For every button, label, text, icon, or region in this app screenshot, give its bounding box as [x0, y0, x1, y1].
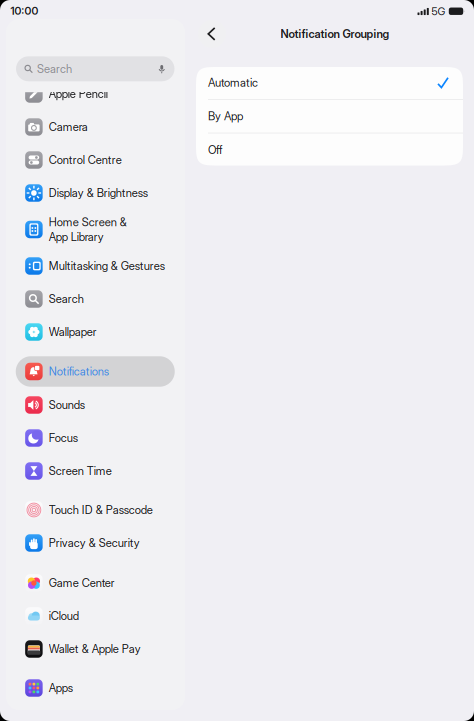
button[interactable]: Wallet & Apple Pay — [16, 632, 174, 665]
staticText: Control Centre — [49, 153, 122, 167]
staticText: Home Screen & — [49, 215, 127, 229]
staticText: Notifications — [49, 365, 109, 378]
staticText: Game Center — [49, 576, 115, 590]
staticText: 10:00 — [10, 4, 38, 17]
staticText: Screen Time — [49, 464, 112, 478]
button[interactable]: Apps — [16, 671, 174, 704]
staticText: Display & Brightness — [49, 186, 148, 200]
button[interactable]: Off — [196, 133, 463, 166]
button[interactable]: By App — [196, 100, 463, 133]
button[interactable]: Multitasking & Gestures — [16, 249, 174, 282]
staticText: Focus — [49, 431, 78, 445]
staticText: Off — [208, 143, 222, 157]
button[interactable]: Sounds — [16, 388, 174, 421]
button[interactable]: Display & Brightness — [16, 176, 174, 209]
button[interactable]: Home Screen & — [16, 209, 174, 249]
button[interactable]: Screen Time — [16, 454, 174, 487]
staticText: Apps — [49, 681, 73, 695]
staticText: By App — [208, 109, 243, 123]
button[interactable]: Automatic — [196, 66, 463, 100]
button[interactable]: Game Center — [16, 566, 174, 599]
staticText: Wallet & Apple Pay — [49, 642, 141, 656]
staticText: App Library — [49, 230, 104, 244]
staticText: Search — [37, 62, 72, 76]
staticText: Privacy & Security — [49, 536, 140, 550]
staticText: Wallpaper — [49, 325, 97, 339]
button[interactable]: Privacy & Security — [16, 526, 174, 559]
staticText: Search — [49, 292, 84, 306]
button[interactable]: Control Centre — [16, 143, 174, 176]
button[interactable]: Touch ID & Passcode — [16, 493, 174, 526]
staticText: Notification Grouping — [280, 27, 389, 41]
button[interactable]: Back — [198, 20, 226, 48]
staticText: Camera — [49, 120, 88, 134]
staticText: Touch ID & Passcode — [49, 503, 153, 517]
staticText: 5G — [431, 5, 445, 18]
staticText: Apple Pencil — [49, 87, 108, 101]
staticText: Automatic — [208, 76, 258, 89]
button[interactable]: Notifications — [16, 354, 174, 388]
button[interactable]: Search — [16, 282, 174, 315]
staticText: Sounds — [49, 398, 85, 412]
button[interactable]: iCloud — [16, 599, 174, 632]
button[interactable]: Focus — [16, 421, 174, 454]
staticText: Multitasking & Gestures — [49, 259, 165, 273]
button[interactable]: Camera — [16, 110, 174, 143]
button[interactable]: Wallpaper — [16, 315, 174, 348]
button[interactable]: Search — [16, 56, 174, 81]
button[interactable]: Apple Pencil — [16, 77, 174, 110]
staticText: iCloud — [49, 609, 79, 623]
